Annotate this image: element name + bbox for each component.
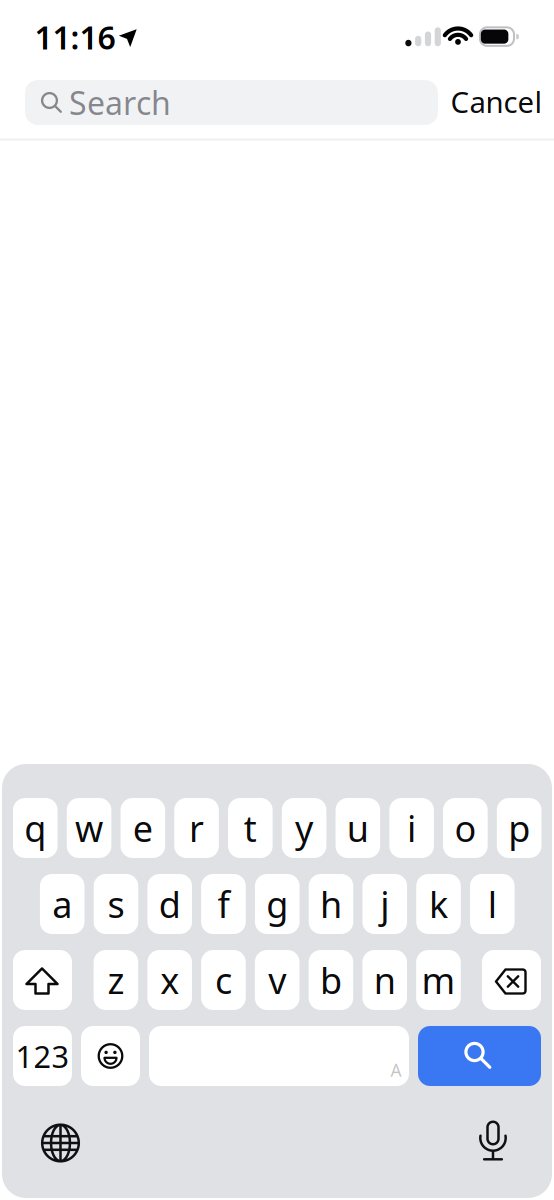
staticText: u bbox=[347, 804, 369, 852]
button[interactable]: k bbox=[416, 874, 461, 934]
button[interactable]: Search bbox=[25, 80, 438, 125]
staticText: g bbox=[266, 880, 288, 928]
staticText: Cancel bbox=[450, 82, 542, 121]
button[interactable]: space bbox=[149, 1026, 409, 1086]
button[interactable]: Next keyboard bbox=[37, 1120, 83, 1166]
button[interactable]: r bbox=[174, 798, 219, 858]
button[interactable]: Search bbox=[418, 1026, 541, 1086]
button[interactable]: Delete bbox=[482, 950, 541, 1010]
staticText: t bbox=[244, 804, 257, 852]
button[interactable]: l bbox=[470, 874, 515, 934]
button[interactable]: w bbox=[67, 798, 111, 858]
staticText: r bbox=[189, 804, 204, 852]
staticText: Search bbox=[69, 81, 171, 124]
staticText: w bbox=[75, 804, 103, 852]
button[interactable]: a bbox=[40, 874, 84, 934]
button[interactable]: s bbox=[94, 874, 138, 934]
button[interactable]: m bbox=[416, 950, 461, 1010]
staticText: x bbox=[160, 956, 179, 1004]
staticText: l bbox=[488, 880, 497, 928]
button[interactable]: n bbox=[362, 950, 407, 1010]
staticText: s bbox=[107, 880, 124, 928]
button[interactable]: c bbox=[201, 950, 246, 1010]
button[interactable]: g bbox=[255, 874, 299, 934]
button[interactable]: f bbox=[201, 874, 246, 934]
button[interactable]: Cancel bbox=[450, 82, 542, 121]
staticText: d bbox=[159, 880, 181, 928]
button[interactable]: b bbox=[309, 950, 353, 1010]
staticText: q bbox=[24, 804, 46, 852]
staticText: o bbox=[454, 804, 476, 852]
staticText: n bbox=[374, 956, 396, 1004]
staticText: a bbox=[52, 880, 72, 928]
button[interactable]: h bbox=[309, 874, 353, 934]
button[interactable]: z bbox=[94, 950, 138, 1010]
staticText: p bbox=[508, 804, 530, 852]
staticText: 11:16 bbox=[34, 16, 115, 58]
staticText: e bbox=[133, 804, 153, 852]
staticText: k bbox=[429, 880, 448, 928]
staticText: 123 bbox=[15, 1036, 69, 1076]
staticText: y bbox=[295, 804, 313, 852]
button[interactable]: v bbox=[255, 950, 299, 1010]
button[interactable]: Emoji bbox=[81, 1026, 140, 1086]
button[interactable]: i bbox=[389, 798, 434, 858]
button[interactable]: Shift bbox=[13, 950, 72, 1010]
staticText: z bbox=[107, 956, 124, 1004]
button[interactable]: o bbox=[443, 798, 488, 858]
staticText: f bbox=[217, 880, 229, 928]
button[interactable]: u bbox=[336, 798, 380, 858]
staticText: m bbox=[421, 956, 455, 1004]
button[interactable]: d bbox=[147, 874, 192, 934]
staticText: h bbox=[320, 880, 342, 928]
button[interactable]: q bbox=[13, 798, 58, 858]
button[interactable]: e bbox=[120, 798, 165, 858]
staticText: A bbox=[390, 1058, 401, 1081]
button[interactable]: j bbox=[362, 874, 407, 934]
staticText: c bbox=[215, 956, 232, 1004]
button[interactable]: y bbox=[282, 798, 326, 858]
button[interactable]: Dictate bbox=[469, 1116, 517, 1164]
button[interactable]: p bbox=[497, 798, 541, 858]
button[interactable]: 123 bbox=[13, 1026, 72, 1086]
staticText: b bbox=[320, 956, 342, 1004]
staticText: v bbox=[268, 956, 286, 1004]
button[interactable]: x bbox=[147, 950, 192, 1010]
staticText: j bbox=[380, 880, 389, 928]
staticText: i bbox=[407, 804, 416, 852]
button[interactable]: t bbox=[228, 798, 273, 858]
